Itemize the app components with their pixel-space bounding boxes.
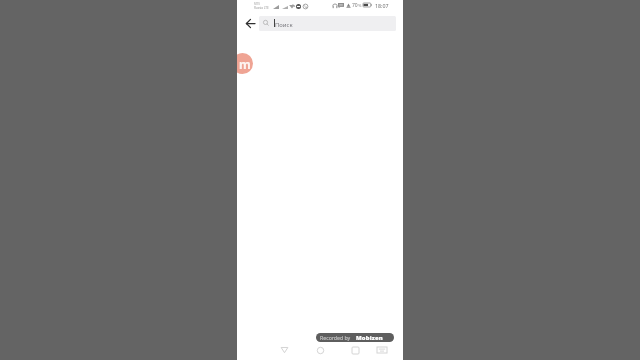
staticText: 70 — [352, 2, 358, 9]
staticText: Russia LTE — [254, 6, 269, 10]
staticText: Mobizen — [356, 334, 383, 342]
button[interactable]: Open app — [237, 53, 253, 74]
button[interactable]: Back — [237, 10, 263, 36]
button[interactable]: Back — [272, 338, 296, 360]
button[interactable]: Recent apps — [343, 338, 367, 360]
staticText: MTS — [254, 2, 260, 6]
button[interactable]: Поиск — [259, 16, 396, 31]
staticText: Поиск — [275, 21, 293, 29]
staticText: Recorded by — [320, 334, 351, 341]
staticText: m — [239, 56, 251, 72]
staticText: % — [358, 3, 362, 9]
button[interactable]: Keyboard — [370, 338, 394, 360]
button[interactable]: Home — [308, 338, 332, 360]
staticText: 18:07 — [375, 2, 389, 9]
